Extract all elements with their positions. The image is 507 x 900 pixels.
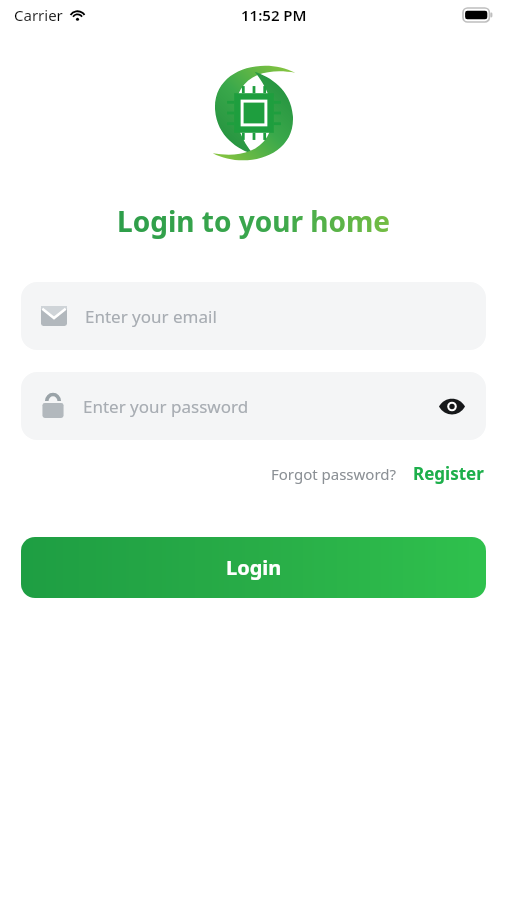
- button[interactable]: Show password: [436, 390, 468, 422]
- staticText: Forgot password?: [271, 464, 397, 484]
- staticText: Login to your home: [117, 202, 390, 240]
- button[interactable]: Register: [409, 456, 488, 491]
- staticText: Login: [226, 554, 282, 581]
- staticText: Enter your email: [85, 305, 217, 328]
- staticText: Carrier: [14, 5, 63, 25]
- button[interactable]: Enter your password: [21, 372, 486, 440]
- button[interactable]: Forgot password?: [267, 458, 401, 490]
- staticText: Register: [413, 462, 484, 485]
- button[interactable]: Enter your email: [21, 282, 486, 350]
- button[interactable]: Login: [21, 537, 486, 598]
- staticText: Enter your password: [83, 395, 436, 418]
- staticText: 11:52 PM: [241, 5, 307, 25]
